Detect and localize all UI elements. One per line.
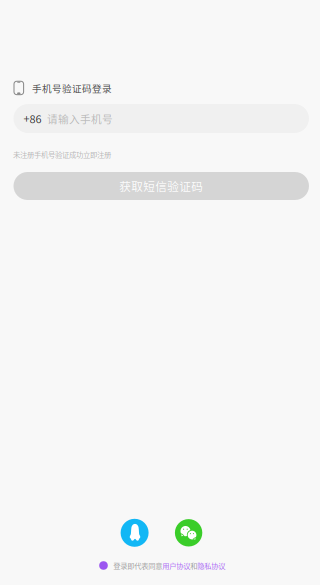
staticText: 隐私协议 xyxy=(197,560,225,571)
staticText: 获取短信验证码 xyxy=(119,178,203,194)
button[interactable]: 微信登录 xyxy=(175,519,202,546)
staticText: 用户协议 xyxy=(162,560,190,571)
button[interactable]: +86 xyxy=(13,104,309,133)
button[interactable]: 登录即代表同意 xyxy=(99,559,225,572)
staticText: 登录即代表同意 xyxy=(113,560,162,571)
button[interactable]: 手机号验证码登录 xyxy=(0,78,122,98)
staticText: 未注册手机号验证成功立即注册 xyxy=(13,149,111,160)
button[interactable]: QQ 登录 xyxy=(121,519,149,547)
staticText: 和 xyxy=(190,560,197,571)
staticText: +86 xyxy=(23,111,41,126)
staticText: 手机号验证码登录 xyxy=(32,81,112,95)
staticText: 请输入手机号 xyxy=(47,111,113,126)
button[interactable]: 获取短信验证码 xyxy=(13,172,309,200)
